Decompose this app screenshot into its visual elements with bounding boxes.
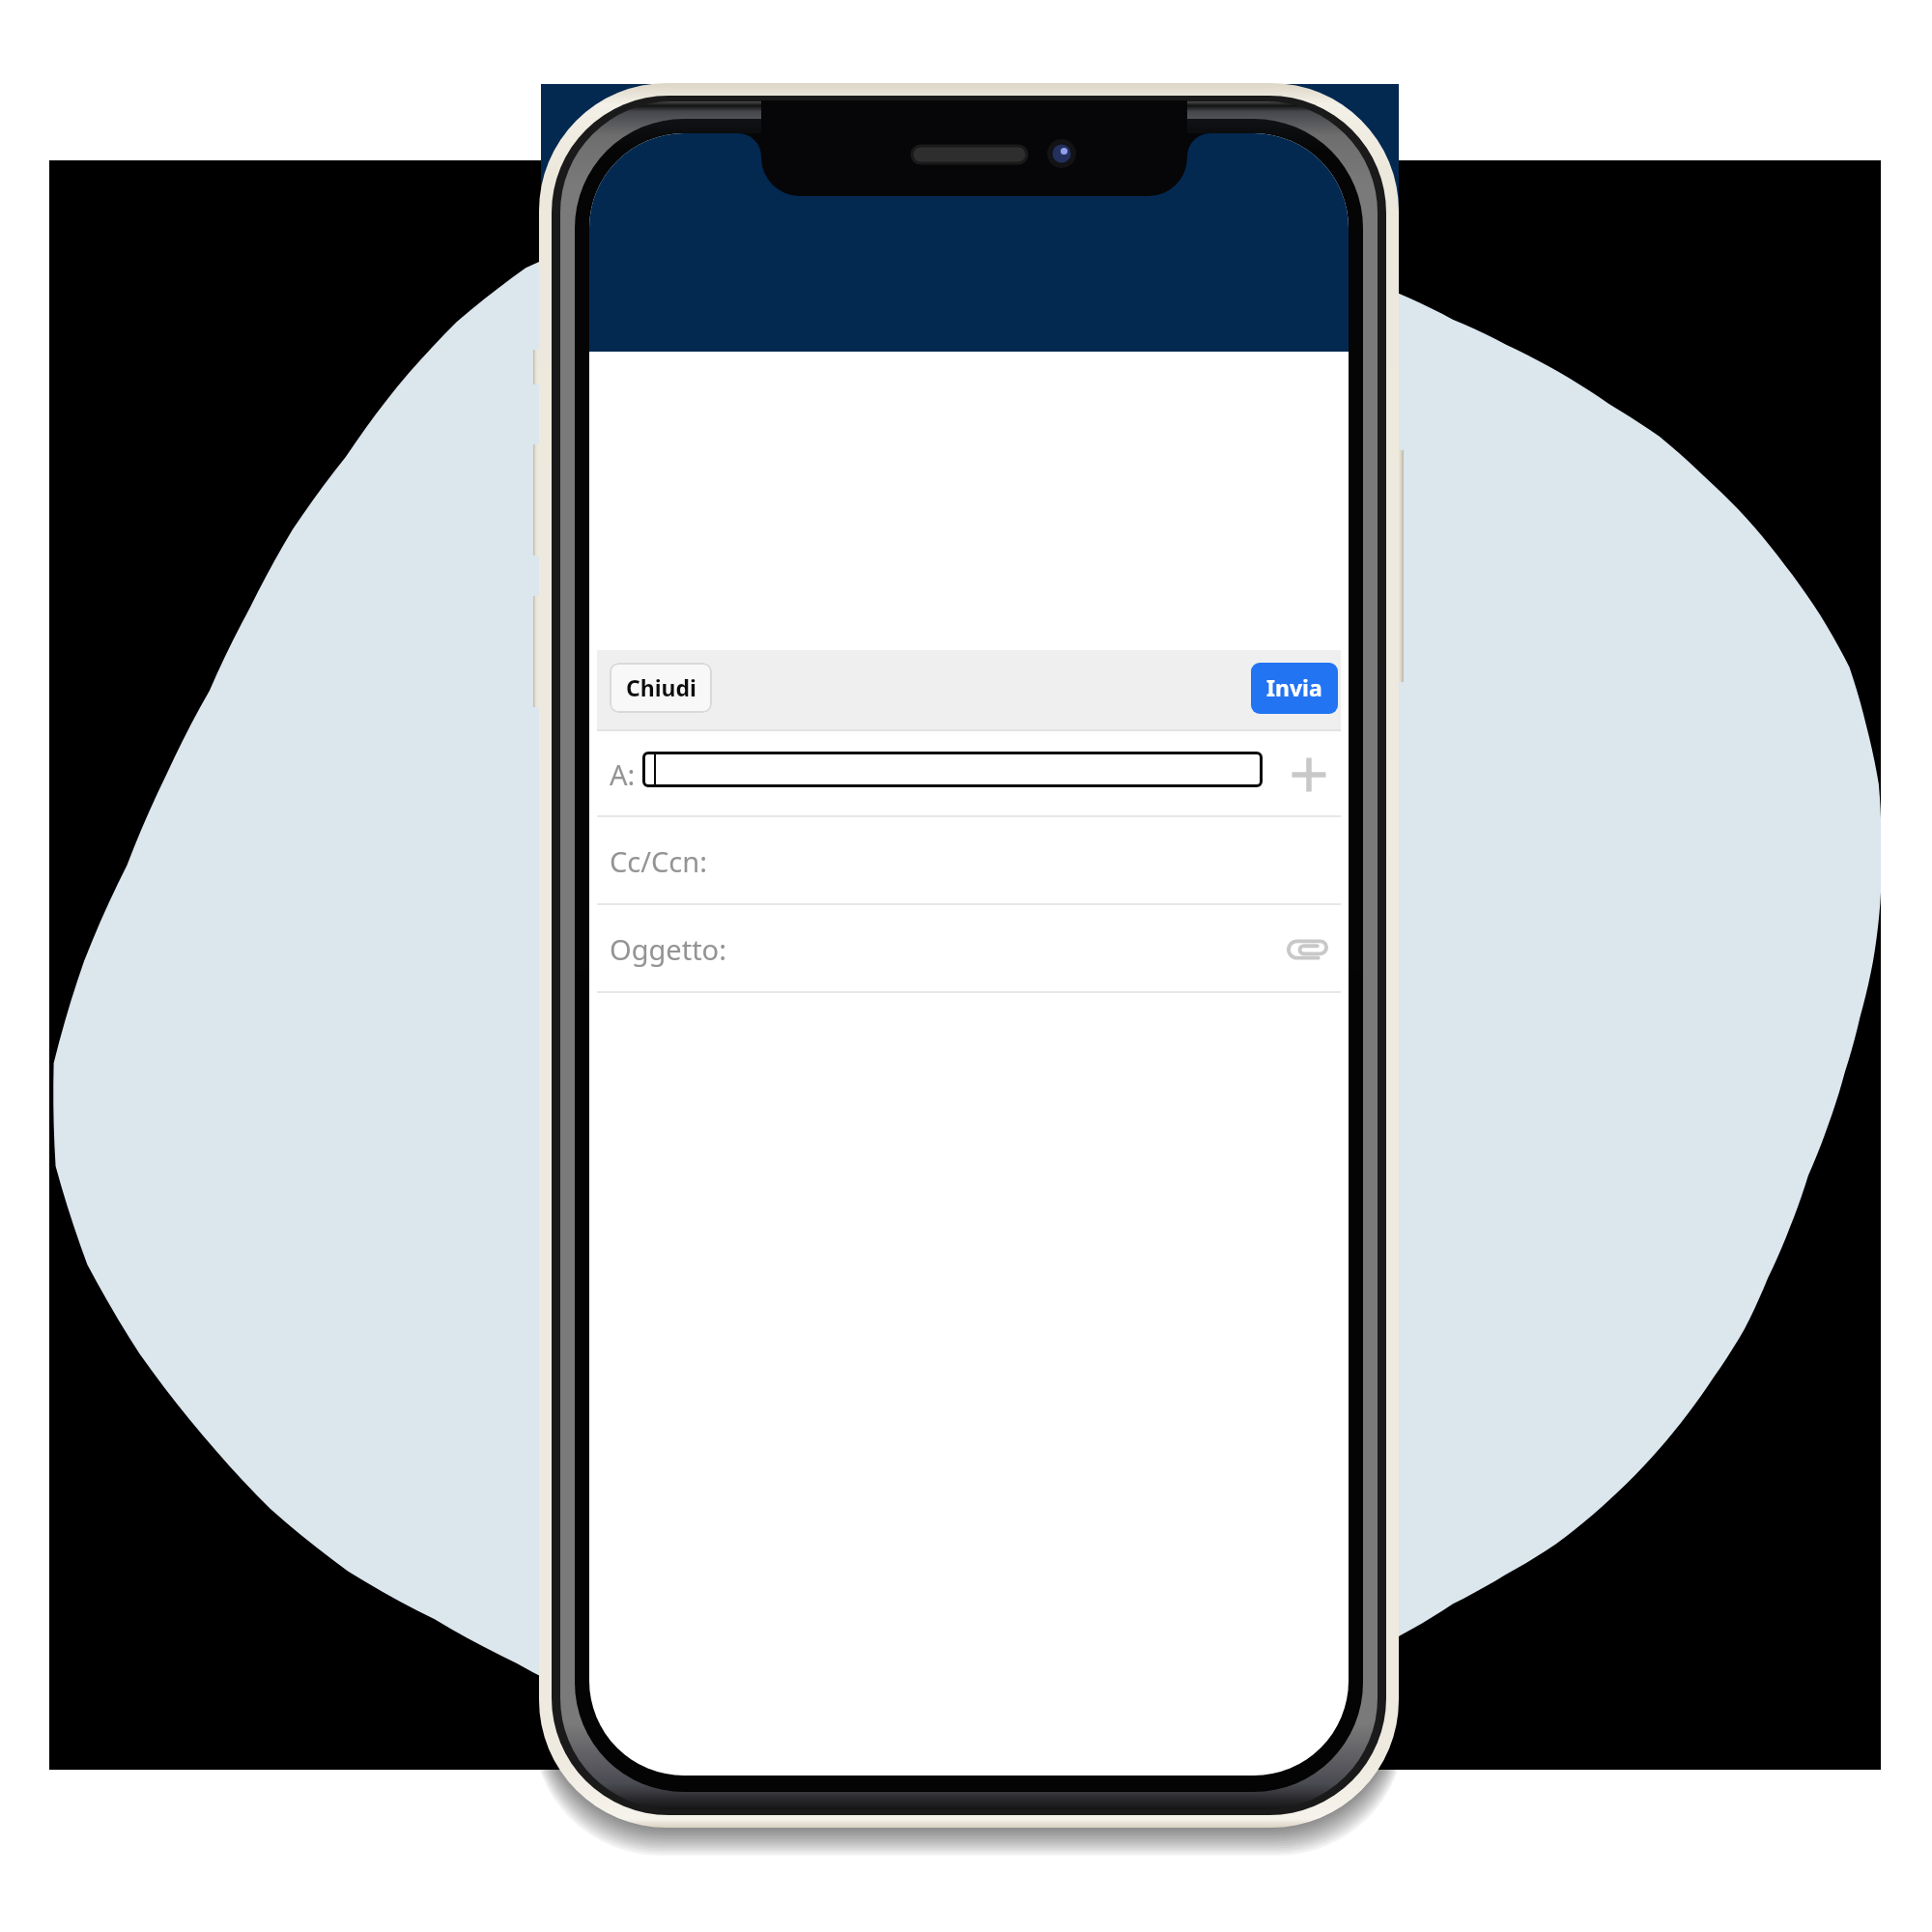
button[interactable]	[642, 752, 1263, 787]
button[interactable]: Add recipient	[1282, 748, 1336, 802]
staticText: Cc/Ccn:	[610, 842, 707, 880]
button[interactable]: Attach file	[1278, 930, 1336, 969]
button[interactable]: Invia	[1251, 663, 1338, 714]
button[interactable]: Chiudi	[610, 663, 712, 713]
staticText: Chiudi	[626, 672, 696, 702]
button[interactable]: A:	[597, 731, 1341, 817]
staticText: A:	[610, 755, 636, 793]
staticText: Oggetto:	[610, 930, 726, 968]
staticText: Invia	[1266, 672, 1322, 702]
button[interactable]: Cc/Ccn:	[597, 817, 1341, 905]
button[interactable]: Oggetto:	[597, 905, 1341, 993]
